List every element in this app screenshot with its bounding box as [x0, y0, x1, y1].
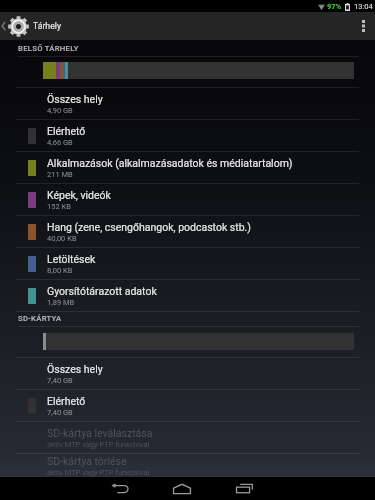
- staticText: 97%: [327, 2, 342, 11]
- button[interactable]: Recent apps: [213, 477, 275, 500]
- other: Settings: [8, 16, 29, 37]
- staticText: 8,00 KB: [47, 266, 73, 275]
- staticText: Összes hely: [47, 363, 103, 375]
- button[interactable]: SD-kártya törlése: [0, 454, 375, 477]
- staticText: 7,40 GB: [47, 376, 73, 385]
- staticText: Letöltések: [47, 253, 96, 265]
- button[interactable]: Back: [89, 477, 151, 500]
- button[interactable]: Összes hely: [0, 88, 375, 120]
- staticText: Elérhető: [47, 395, 86, 407]
- staticText: Alkalmazások (alkalmazásadatok és médiat…: [47, 157, 293, 169]
- button[interactable]: Gyorsítótárazott adatok: [0, 280, 375, 312]
- staticText: Összes hely: [47, 93, 103, 105]
- staticText: 4,66 GB: [47, 138, 73, 147]
- button[interactable]: Hang (zene, csengőhangok, podcastok stb.…: [0, 216, 375, 248]
- staticText: aktív MTP vagy PTP funkcióval: [47, 468, 150, 477]
- staticText: Elérhető: [47, 125, 86, 137]
- button[interactable]: Home: [151, 477, 213, 500]
- staticText: Hang (zene, csengőhangok, podcastok stb.…: [47, 221, 252, 233]
- staticText: Képek, videók: [47, 189, 111, 201]
- button[interactable]: Elérhető: [0, 390, 375, 422]
- staticText: Gyorsítótárazott adatok: [47, 285, 157, 297]
- staticText: Tárhely: [33, 21, 61, 31]
- button[interactable]: More options: [351, 12, 375, 40]
- staticText: BELSŐ TÁRHELY: [18, 44, 79, 53]
- button[interactable]: Alkalmazások (alkalmazásadatok és médiat…: [0, 152, 375, 184]
- staticText: SD-KÁRTYA: [18, 314, 62, 323]
- button[interactable]: Letöltések: [0, 248, 375, 280]
- staticText: 7,40 GB: [47, 408, 73, 417]
- button[interactable]: Settings: [0, 12, 61, 40]
- staticText: 1,89 MB: [47, 298, 75, 307]
- staticText: aktív MTP vagy PTP funkcióval: [47, 440, 150, 449]
- staticText: SD-kártya leválasztása: [47, 427, 153, 439]
- staticText: SD-kártya törlése: [47, 455, 127, 467]
- staticText: 40,00 KB: [47, 234, 77, 243]
- staticText: 13:04: [354, 2, 373, 11]
- button[interactable]: Elérhető: [0, 120, 375, 152]
- button[interactable]: SD-kártya leválasztása: [0, 422, 375, 454]
- staticText: 152 KB: [47, 202, 71, 211]
- button[interactable]: Képek, videók: [0, 184, 375, 216]
- staticText: 211 MB: [47, 170, 73, 179]
- staticText: 4,90 GB: [47, 106, 73, 115]
- button[interactable]: Összes hely: [0, 358, 375, 390]
